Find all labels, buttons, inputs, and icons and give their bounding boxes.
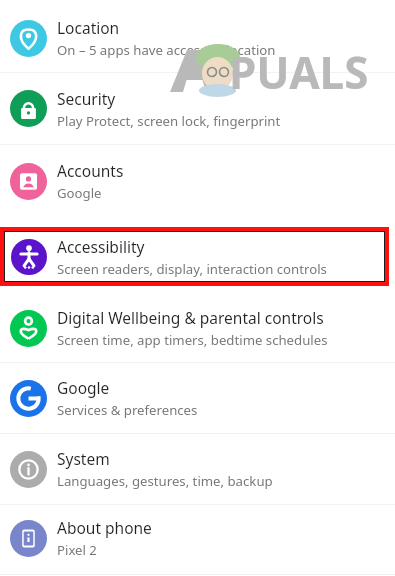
staticText: Google: [57, 377, 110, 398]
staticText: On – 5 apps have access to location: [57, 41, 276, 59]
button[interactable]: Accounts: [0, 145, 395, 217]
staticText: Accessibility: [57, 236, 145, 257]
staticText: Digital Wellbeing & parental controls: [57, 307, 324, 328]
button[interactable]: About phone: [0, 505, 395, 571]
staticText: Services & preferences: [57, 401, 198, 419]
staticText: Google: [57, 184, 102, 202]
staticText: Screen time, app timers, bedtime schedul…: [57, 331, 328, 349]
button[interactable]: Digital Wellbeing: [0, 294, 395, 362]
button[interactable]: Location: [0, 4, 395, 72]
button[interactable]: Google: [0, 363, 395, 433]
staticText: Play Protect, screen lock, fingerprint: [57, 112, 281, 130]
staticText: Accounts: [57, 160, 124, 181]
staticText: Location: [57, 17, 120, 38]
staticText: Screen readers, display, interaction con…: [57, 260, 327, 278]
button[interactable]: System: [0, 434, 395, 504]
staticText: System: [57, 448, 110, 469]
staticText: Pixel 2: [57, 541, 97, 559]
staticText: Security: [57, 88, 116, 109]
button[interactable]: Accessibility: [0, 227, 395, 286]
button[interactable]: Security: [0, 73, 395, 144]
staticText: PUALS: [229, 42, 369, 102]
staticText: Languages, gestures, time, backup: [57, 472, 273, 490]
staticText: About phone: [57, 517, 152, 538]
